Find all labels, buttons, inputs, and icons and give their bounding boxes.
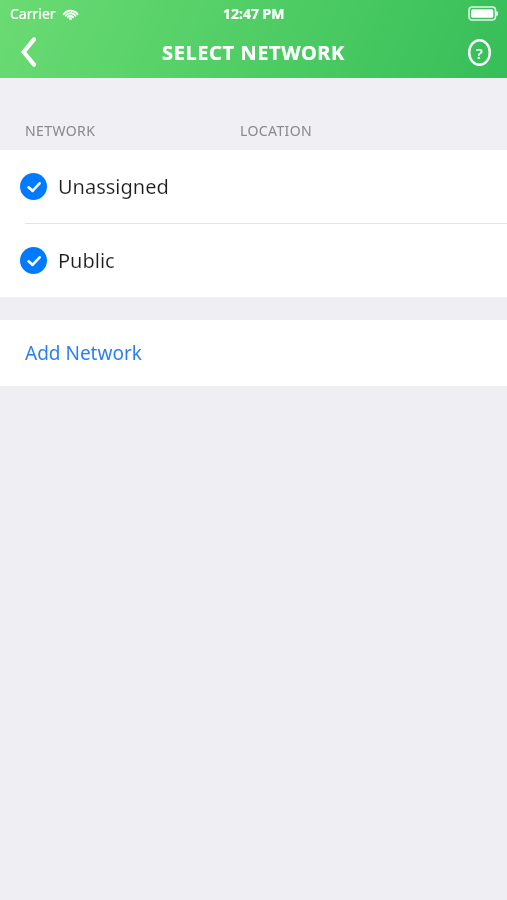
staticText: Public	[58, 247, 115, 274]
button[interactable]: Unassigned	[0, 150, 507, 223]
staticText: Carrier	[10, 4, 56, 23]
button[interactable]: Help	[451, 26, 507, 78]
staticText: NETWORK	[25, 121, 96, 140]
button[interactable]: Public	[0, 224, 507, 297]
staticText: SELECT NETWORK	[162, 39, 345, 66]
button[interactable]: Back	[0, 26, 58, 78]
staticText: Add Network	[25, 340, 142, 366]
staticText: LOCATION	[240, 121, 313, 140]
staticText: ?	[476, 43, 483, 63]
button[interactable]: Add Network	[0, 320, 507, 386]
staticText: Unassigned	[58, 173, 169, 200]
staticText: 12:47 PM	[223, 4, 285, 23]
